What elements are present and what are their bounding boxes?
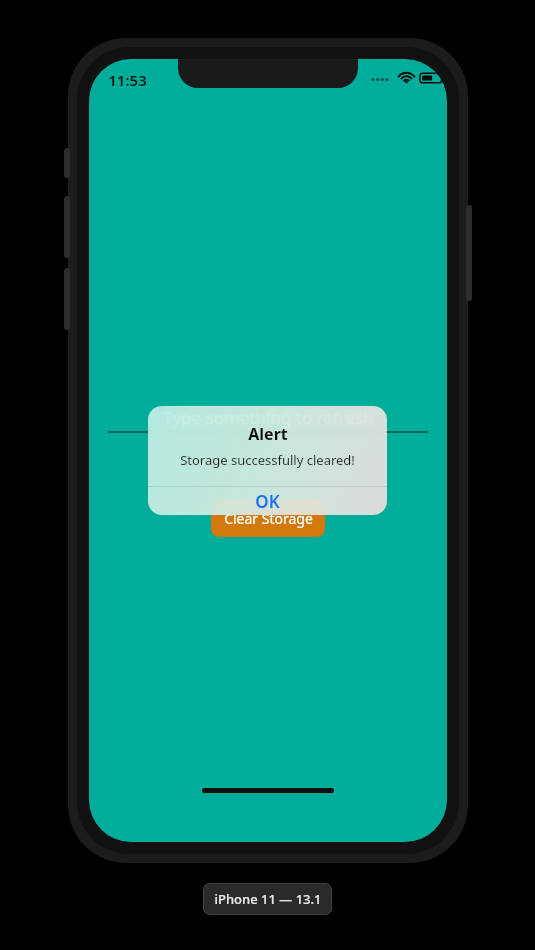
staticText: Clear Storage bbox=[224, 509, 313, 528]
staticText: Storage successfully cleared! bbox=[180, 451, 355, 469]
button[interactable]: iPhone 11 — 13.1 bbox=[203, 883, 332, 915]
staticText: iPhone 11 — 13.1 bbox=[214, 890, 322, 908]
staticText: 11:53 bbox=[108, 70, 147, 90]
button[interactable]: Clear Storage bbox=[211, 499, 325, 537]
staticText: OK bbox=[255, 490, 280, 513]
staticText: Type something to refresh bbox=[163, 406, 374, 429]
staticText: Alert bbox=[248, 423, 288, 445]
button[interactable]: Type something to refresh bbox=[105, 399, 431, 435]
button[interactable]: OK bbox=[148, 487, 387, 515]
